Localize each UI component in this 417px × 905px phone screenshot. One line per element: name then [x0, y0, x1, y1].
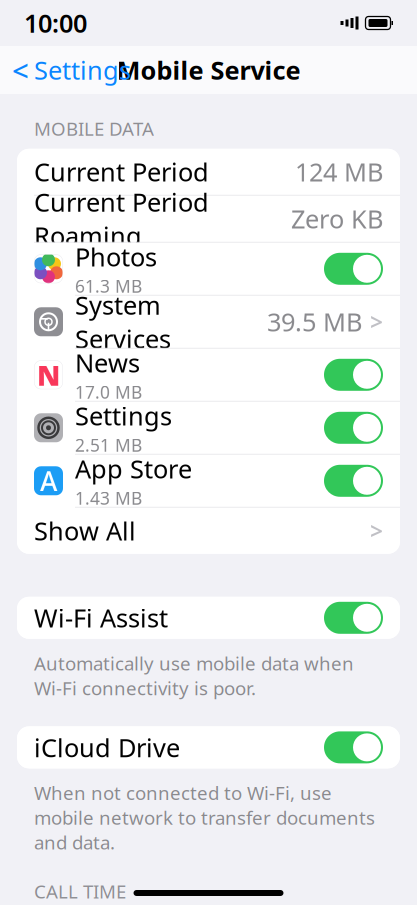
button[interactable]: Settings — [17, 402, 400, 454]
staticText: 2.51 MB — [75, 434, 142, 457]
staticText: N — [37, 356, 60, 393]
staticText: 124 MB — [295, 155, 383, 189]
staticText: Mobile Service — [116, 53, 300, 87]
staticText: Show All — [34, 514, 136, 548]
staticText: MOBILE DATA — [34, 116, 154, 141]
button[interactable]: Current Period — [17, 149, 400, 195]
button[interactable]: iCloud Drive — [17, 726, 400, 768]
button[interactable]: Wi-Fi Assist — [17, 597, 400, 639]
staticText: News — [75, 346, 140, 380]
staticText: CALL TIME — [34, 879, 126, 903]
button[interactable]: Current Period Roaming — [17, 196, 400, 242]
button[interactable]: A — [17, 455, 400, 507]
button[interactable]: N — [17, 349, 400, 401]
staticText: Current Period Roaming — [34, 185, 209, 252]
staticText: Wi-Fi Assist — [34, 601, 168, 635]
staticText: > — [370, 307, 383, 337]
staticText: 17.0 MB — [75, 381, 142, 404]
staticText: 1.43 MB — [75, 487, 142, 510]
staticText: 10:00 — [24, 6, 87, 40]
staticText: App Store — [75, 452, 192, 486]
staticText: Automatically use mobile data when Wi-Fi… — [34, 651, 354, 700]
staticText: Zero KB — [291, 202, 383, 236]
staticText: System Services — [75, 288, 171, 355]
staticText: Settings — [34, 53, 131, 87]
button[interactable]: Photos — [17, 243, 400, 295]
staticText: > — [370, 516, 383, 546]
button[interactable]: System Services — [17, 296, 400, 348]
staticText: Current Period — [34, 155, 209, 189]
staticText: 61.3 MB — [75, 275, 142, 298]
staticText: iCloud Drive — [34, 730, 180, 764]
button[interactable]: < — [0, 48, 143, 92]
staticText: Photos — [75, 240, 157, 274]
staticText: Settings — [75, 399, 172, 433]
staticText: When not connected to Wi-Fi, use mobile … — [34, 780, 375, 855]
staticText: < — [12, 50, 29, 89]
staticText: 39.5 MB — [267, 305, 362, 339]
button[interactable]: Show All — [17, 508, 400, 554]
staticText: A — [40, 463, 57, 498]
